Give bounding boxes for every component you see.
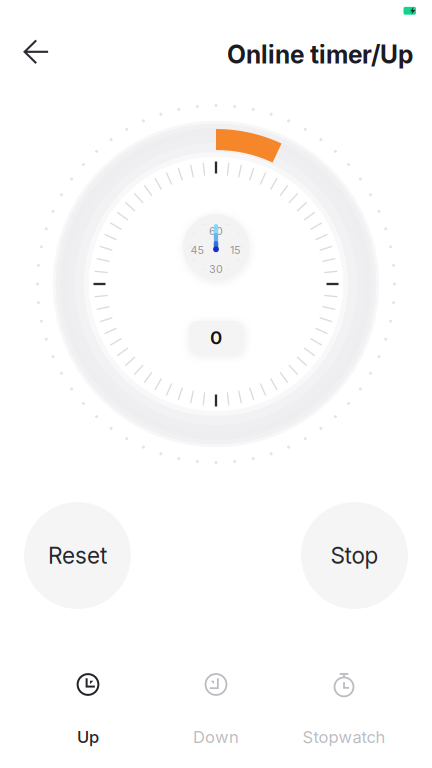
staticText: 15	[230, 243, 240, 256]
button[interactable]: Stop	[301, 502, 408, 609]
staticText: 45	[190, 243, 203, 256]
button[interactable]: Down	[152, 673, 280, 745]
staticText: Online timer/Up	[227, 40, 413, 69]
staticText: 60	[209, 224, 223, 237]
staticText: 30	[209, 262, 223, 275]
staticText: Reset	[48, 542, 107, 569]
button[interactable]: Stopwatch	[280, 673, 408, 745]
staticText: Stopwatch	[302, 727, 385, 747]
staticText: 0	[210, 326, 222, 349]
staticText: Stop	[330, 542, 378, 569]
staticText: Up	[77, 727, 99, 747]
button[interactable]: Back	[12, 27, 61, 77]
staticText: Down	[193, 727, 239, 747]
button[interactable]: Up	[24, 673, 152, 745]
button[interactable]: Reset	[24, 502, 131, 609]
